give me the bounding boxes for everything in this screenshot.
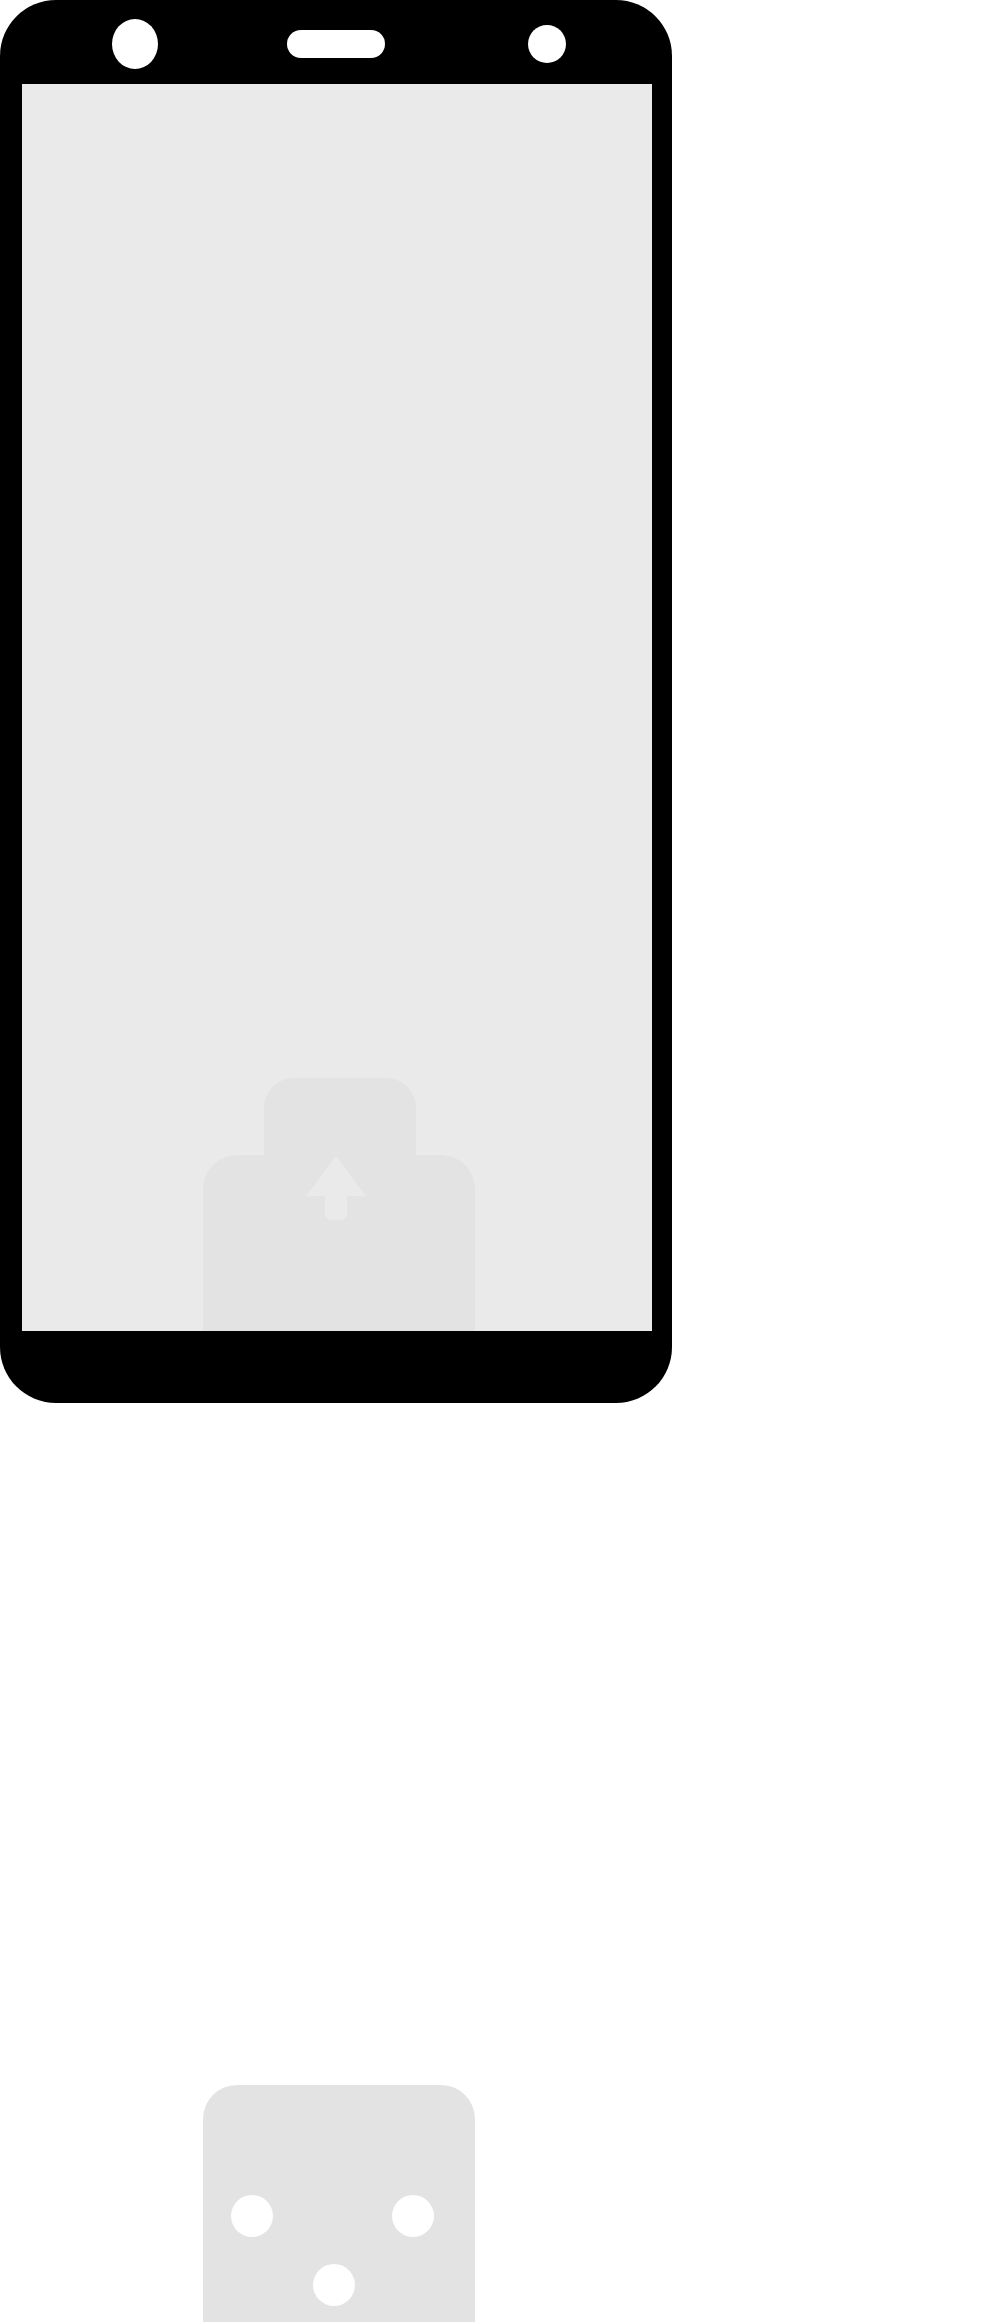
button[interactable]: Phone device illustration bbox=[0, 0, 996, 2322]
